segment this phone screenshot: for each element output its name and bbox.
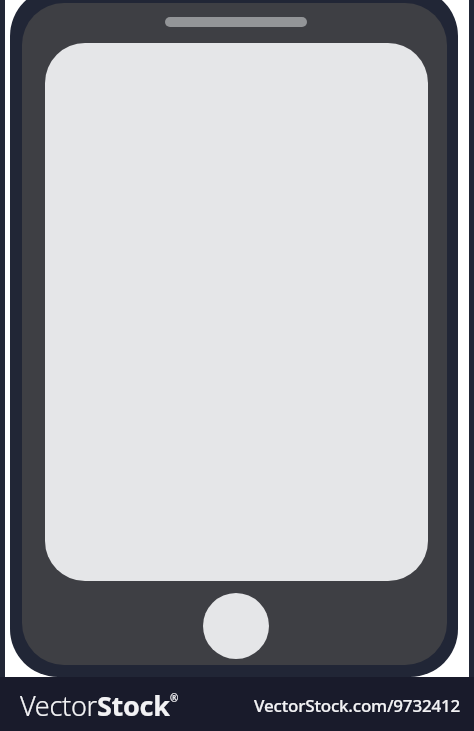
- button[interactable]: Home button: [203, 593, 269, 659]
- button[interactable]: Smartphone illustration: [10, 0, 458, 677]
- staticText: ®: [170, 691, 179, 705]
- button[interactable]: VectorStock.com/9732412: [254, 694, 460, 717]
- staticText: Vector: [20, 687, 97, 724]
- staticText: Stock: [97, 687, 170, 724]
- button[interactable]: Phone display: [45, 43, 428, 581]
- button[interactable]: Vector: [20, 687, 179, 724]
